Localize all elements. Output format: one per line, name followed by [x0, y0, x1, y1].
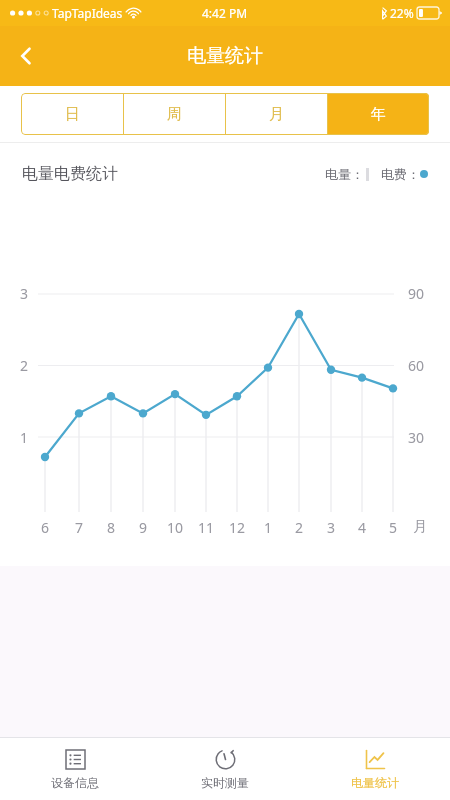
staticText: 11 — [194, 518, 218, 537]
staticText: 5 — [381, 518, 405, 537]
staticText: 电量： — [325, 166, 364, 182]
button[interactable]: 周 — [124, 93, 225, 135]
staticText: 月 — [413, 518, 427, 536]
staticText: 电量统计 — [187, 44, 263, 68]
staticText: 2 — [287, 518, 311, 537]
staticText: 4:42 PM — [202, 5, 248, 21]
staticText: 1 — [20, 428, 29, 447]
staticText: 电量电费统计 — [22, 164, 118, 184]
staticText: 30 — [408, 428, 425, 447]
button[interactable]: 电量统计 — [300, 738, 450, 800]
staticText: 8 — [99, 518, 123, 537]
staticText: 月 — [269, 105, 284, 124]
button[interactable]: Back — [0, 30, 52, 82]
staticText: 日 — [65, 105, 80, 124]
staticText: 1 — [256, 518, 280, 537]
staticText: 周 — [167, 105, 182, 124]
staticText: 10 — [163, 518, 187, 537]
button[interactable]: 设备信息 — [0, 738, 150, 800]
button[interactable]: 日 — [21, 93, 123, 135]
staticText: 年 — [371, 105, 386, 124]
staticText: 4 — [350, 518, 374, 537]
staticText: 3 — [319, 518, 343, 537]
staticText: 7 — [67, 518, 91, 537]
staticText: 22% — [390, 5, 414, 21]
staticText: 电量统计 — [351, 775, 399, 790]
staticText: 9 — [131, 518, 155, 537]
staticText: 3 — [20, 284, 29, 303]
staticText: 12 — [225, 518, 249, 537]
staticText: 电费： — [381, 166, 420, 182]
staticText: 90 — [408, 284, 425, 303]
staticText: TapTapIdeas — [52, 5, 123, 21]
staticText: 6 — [33, 518, 57, 537]
staticText: 实时测量 — [201, 775, 249, 790]
button[interactable]: 月 — [226, 93, 327, 135]
staticText: 设备信息 — [51, 775, 99, 790]
button[interactable]: 实时测量 — [150, 738, 300, 800]
button[interactable]: 年 — [328, 93, 429, 135]
staticText: 2 — [20, 356, 29, 375]
staticText: 60 — [408, 356, 425, 375]
